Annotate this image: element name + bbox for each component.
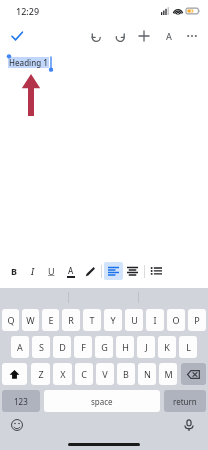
button[interactable]: M — [159, 363, 177, 385]
button[interactable]: G — [95, 336, 113, 358]
staticText: P — [194, 314, 200, 326]
button[interactable]: Text colour — [61, 262, 80, 280]
button[interactable]: Align left — [104, 262, 123, 280]
button[interactable]: Backspace — [181, 363, 206, 385]
staticText: I — [153, 314, 157, 326]
staticText: H — [122, 341, 129, 353]
button[interactable]: J — [137, 336, 155, 358]
staticText: L — [186, 341, 191, 353]
staticText: A — [17, 341, 23, 353]
staticText: 123 — [14, 396, 28, 407]
button[interactable]: P — [188, 309, 206, 331]
button[interactable]: C — [75, 363, 93, 385]
button[interactable]: B — [117, 363, 135, 385]
button[interactable]: Y — [104, 309, 122, 331]
staticText: M — [164, 368, 173, 380]
button[interactable]: S — [32, 336, 50, 358]
button[interactable]: Emoji — [8, 416, 26, 434]
staticText: B — [123, 368, 129, 380]
staticText: C — [81, 368, 87, 380]
button[interactable]: space — [44, 390, 160, 412]
staticText: J — [145, 341, 148, 353]
staticText: W — [26, 314, 35, 326]
button[interactable]: L — [179, 336, 197, 358]
button[interactable]: Q — [2, 309, 19, 331]
staticText: T — [89, 314, 95, 326]
button[interactable]: K — [158, 336, 176, 358]
button[interactable]: Highlight — [80, 262, 99, 280]
staticText: V — [102, 368, 108, 380]
staticText: D — [59, 341, 66, 353]
button[interactable]: Underline — [42, 262, 61, 280]
button[interactable]: V — [96, 363, 114, 385]
button[interactable]: U — [125, 309, 143, 331]
staticText: A — [166, 30, 172, 42]
button[interactable]: 123 — [2, 390, 40, 412]
staticText: E — [48, 314, 54, 326]
button[interactable]: Bulleted list — [147, 262, 166, 280]
button[interactable]: Italic — [23, 262, 42, 280]
button[interactable]: Done — [6, 25, 28, 47]
staticText: O — [172, 314, 180, 326]
button[interactable]: Redo — [108, 24, 132, 48]
button[interactable]: H — [116, 336, 134, 358]
button[interactable]: O — [167, 309, 185, 331]
staticText: F — [81, 341, 86, 353]
button[interactable]: Text format — [156, 24, 180, 48]
staticText: Z — [38, 368, 44, 380]
staticText: Y — [110, 314, 116, 326]
staticText: A — [68, 265, 74, 276]
staticText: return — [173, 396, 197, 407]
button[interactable]: W — [22, 309, 39, 331]
staticText: X — [60, 368, 66, 380]
button[interactable]: I — [146, 309, 164, 331]
button[interactable]: Bold — [4, 262, 23, 280]
staticText: U — [48, 265, 55, 277]
staticText: S — [39, 341, 44, 353]
staticText: G — [101, 341, 108, 353]
button[interactable]: Dictate — [180, 416, 198, 434]
button[interactable]: T — [83, 309, 101, 331]
button[interactable]: return — [164, 390, 206, 412]
staticText: 12:29 — [16, 5, 40, 17]
button[interactable]: D — [53, 336, 71, 358]
staticText: I — [31, 265, 35, 277]
button[interactable]: More options — [180, 24, 204, 48]
staticText: R — [68, 314, 74, 326]
button[interactable]: Z — [31, 363, 50, 385]
staticText: Heading 1 — [9, 57, 48, 68]
staticText: U — [131, 314, 138, 326]
button[interactable]: Heading 1 — [9, 57, 48, 68]
staticText: K — [164, 341, 170, 353]
button[interactable]: Undo — [84, 24, 108, 48]
button[interactable]: N — [138, 363, 156, 385]
button[interactable]: X — [53, 363, 72, 385]
button[interactable]: Insert — [132, 24, 156, 48]
button[interactable]: A — [11, 336, 29, 358]
button[interactable]: Shift — [2, 363, 27, 385]
staticText: B — [11, 265, 17, 277]
button[interactable]: R — [62, 309, 80, 331]
staticText: space — [91, 396, 113, 407]
staticText: Q — [7, 314, 15, 326]
staticText: N — [144, 368, 151, 380]
button[interactable]: Align center — [123, 262, 142, 280]
button[interactable]: E — [42, 309, 59, 331]
button[interactable]: F — [74, 336, 92, 358]
